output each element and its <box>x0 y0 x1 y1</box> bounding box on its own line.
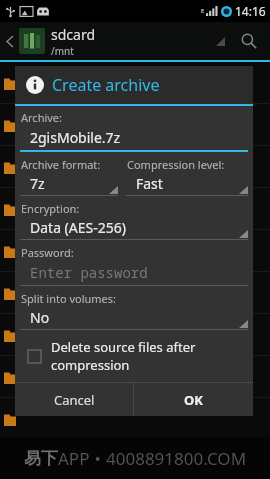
staticText: sdcard <box>51 25 96 44</box>
staticText: Data (AES-256) <box>30 218 239 237</box>
staticText: Cancel <box>54 391 95 409</box>
staticText: No <box>30 308 239 327</box>
button[interactable]: Enter password <box>20 263 248 286</box>
staticText: Compression level: <box>127 157 225 172</box>
staticText: Encryption: <box>21 201 80 216</box>
button[interactable]: Back <box>3 22 17 60</box>
button[interactable]: Data (AES-256) <box>20 218 248 240</box>
staticText: 2gisMobile.7z <box>30 128 121 147</box>
button[interactable]: No <box>20 308 248 330</box>
staticText: Split into volumes: <box>21 291 117 306</box>
staticText: Delete source files after <box>51 338 196 356</box>
staticText: Fast <box>136 174 239 193</box>
staticText: OK <box>184 391 203 409</box>
staticText: 14:16 <box>235 3 266 19</box>
staticText: 4008891800.COM <box>106 447 247 470</box>
button[interactable]: Search <box>236 22 262 60</box>
staticText: 7z <box>30 174 109 193</box>
staticText: 易下 <box>24 448 58 469</box>
staticText: compression <box>51 356 130 374</box>
staticText: • <box>90 447 106 470</box>
staticText: /mnt <box>51 44 74 58</box>
button[interactable]: 7z <box>20 174 118 196</box>
staticText: Archive format: <box>21 157 101 172</box>
staticText: Create archive <box>52 74 160 96</box>
button[interactable]: Sort <box>210 22 230 60</box>
button[interactable]: OK <box>134 383 253 416</box>
button[interactable]: Fast <box>126 174 248 196</box>
staticText: E <box>201 7 205 15</box>
button[interactable]: Delete source files after <box>20 336 248 376</box>
staticText: APP <box>58 447 90 470</box>
button[interactable]: Cancel <box>15 383 133 416</box>
staticText: Archive: <box>21 110 63 125</box>
staticText: Password: <box>21 245 74 260</box>
button[interactable]: 2gisMobile.7z <box>20 128 248 152</box>
staticText: Enter password <box>30 263 148 282</box>
